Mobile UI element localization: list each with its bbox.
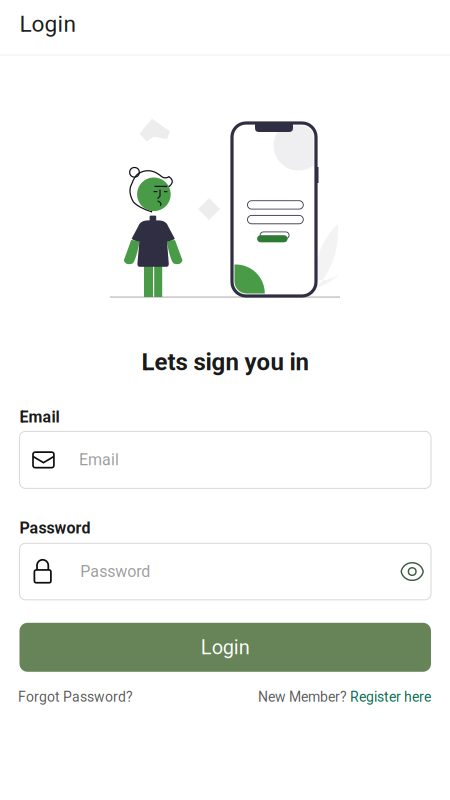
staticText: New Member? (258, 689, 347, 705)
staticText: Login (201, 636, 250, 659)
button[interactable]: Forgot Password? (18, 689, 133, 705)
staticText: Forgot Password? (18, 689, 133, 705)
staticText: Login (19, 11, 76, 37)
staticText: Password (80, 562, 150, 581)
button[interactable]: Show password (400, 562, 424, 581)
staticText: Email (19, 408, 59, 426)
staticText: Email (79, 450, 119, 469)
staticText: Lets sign you in (141, 348, 308, 376)
staticText: Register here (347, 689, 431, 705)
button[interactable]: Login (19, 623, 431, 672)
button[interactable]: Register here (347, 689, 431, 705)
staticText: Password (19, 519, 90, 537)
